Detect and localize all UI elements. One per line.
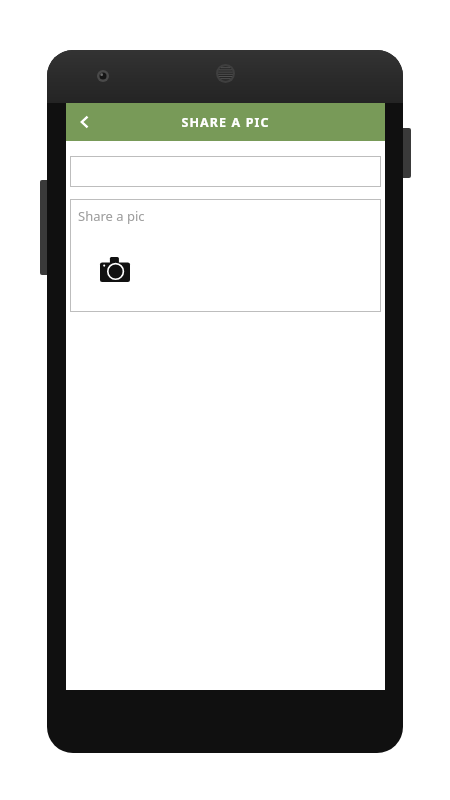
- button[interactable]: [70, 156, 381, 187]
- button[interactable]: Take a photo: [96, 250, 134, 288]
- button[interactable]: Back: [66, 103, 104, 141]
- staticText: SHARE A PIC: [181, 114, 270, 131]
- staticText: Share a pic: [78, 207, 145, 225]
